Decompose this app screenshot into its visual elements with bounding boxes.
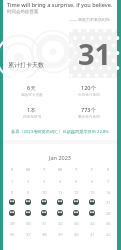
staticText: 29 — [10, 221, 15, 226]
staticText: F — [84, 167, 100, 172]
staticText: 8 — [11, 190, 14, 195]
staticText: 4 — [59, 179, 62, 184]
staticText: 33 — [74, 221, 79, 226]
staticText: 30 — [26, 221, 31, 226]
staticText: 28 — [106, 211, 111, 216]
staticText: 3 — [43, 179, 46, 184]
staticText: 1本 — [27, 106, 36, 114]
staticText: 时间会给你答案 — [7, 9, 39, 15]
staticText: 已学完词书 — [23, 115, 41, 120]
staticText: 1 — [11, 179, 14, 184]
staticText: 13 — [90, 190, 95, 195]
staticText: —— 愿努力不辜负时光 — [69, 17, 111, 22]
staticText: Jan 2023 — [49, 154, 72, 161]
staticText: T — [68, 167, 84, 172]
staticText: 6 — [91, 179, 94, 184]
staticText: 773个 — [81, 106, 96, 114]
staticText: 9 — [27, 190, 30, 195]
staticText: 38 — [42, 232, 47, 237]
staticText: 10 — [42, 190, 47, 195]
staticText: 12 — [74, 190, 79, 195]
staticText: 40 — [74, 232, 79, 237]
staticText: 39 — [58, 232, 63, 237]
staticText: 36 — [10, 232, 15, 237]
staticText: S — [100, 167, 116, 172]
staticText: 42 — [106, 232, 111, 237]
staticText: M — [20, 167, 36, 172]
staticText: 41 — [90, 232, 95, 237]
staticText: S — [4, 167, 20, 172]
staticText: 5 — [75, 179, 78, 184]
staticText: 累计打卡天数 — [8, 61, 44, 69]
staticText: 6天 — [27, 84, 36, 92]
staticText: 今日学习单词 — [78, 93, 100, 98]
staticText: 7 — [107, 179, 110, 184]
staticText: 11 — [58, 190, 63, 195]
staticText: 连续打卡天数 — [21, 93, 43, 98]
staticText: 32 — [58, 221, 63, 226]
staticText: 恭喜《2023考研英语词汇》已超越同期学员的 22.8% — [11, 129, 109, 135]
staticText: 120个 — [81, 84, 96, 92]
staticText: Time will bring a surprise, if you belie… — [7, 1, 113, 8]
staticText: 31 — [78, 34, 112, 73]
staticText: 35 — [106, 221, 111, 226]
staticText: 31 — [42, 221, 47, 226]
staticText: 累计学习单词 — [78, 115, 100, 120]
staticText: 34 — [90, 221, 95, 226]
staticText: W — [52, 167, 68, 172]
staticText: 21 — [106, 200, 111, 205]
staticText: 14 — [106, 190, 111, 195]
staticText: T — [36, 167, 52, 172]
staticText: 37 — [26, 232, 31, 237]
staticText: 2 — [27, 179, 30, 184]
